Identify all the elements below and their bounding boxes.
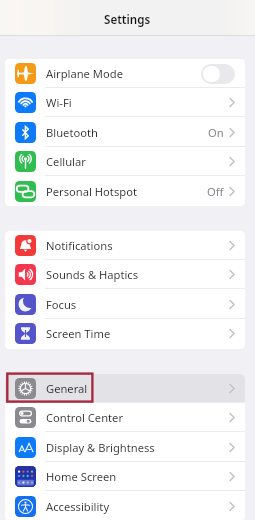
- button[interactable]: Bluetooth: [5, 118, 245, 147]
- staticText: Sounds & Haptics: [46, 267, 139, 282]
- staticText: Focus: [46, 297, 77, 312]
- staticText: Personal Hotspot: [46, 184, 137, 199]
- button[interactable]: Airplane Mode: [5, 59, 245, 88]
- staticText: Bluetooth: [46, 125, 98, 140]
- button[interactable]: Cellular: [5, 147, 245, 176]
- staticText: Screen Time: [46, 326, 111, 341]
- button[interactable]: Airplane Mode toggle: [201, 64, 235, 84]
- staticText: Wi-Fi: [46, 95, 72, 110]
- staticText: General: [46, 381, 88, 396]
- staticText: Off: [207, 184, 224, 199]
- button[interactable]: Wi-Fi: [5, 88, 245, 117]
- button[interactable]: Display & Brightness: [5, 433, 245, 462]
- button[interactable]: Personal Hotspot: [5, 177, 245, 206]
- button[interactable]: Sounds & Haptics: [5, 260, 245, 289]
- button[interactable]: Accessibility: [5, 492, 245, 520]
- staticText: Display & Brightness: [46, 440, 155, 455]
- staticText: On: [208, 125, 224, 140]
- button[interactable]: Focus: [5, 290, 245, 319]
- staticText: Control Center: [46, 410, 124, 425]
- button[interactable]: Screen Time: [5, 319, 245, 348]
- staticText: Accessibility: [46, 499, 110, 514]
- staticText: Settings: [104, 12, 151, 28]
- button[interactable]: General: [5, 374, 245, 403]
- staticText: Home Screen: [46, 469, 117, 484]
- button[interactable]: Control Center: [5, 403, 245, 432]
- staticText: Airplane Mode: [46, 66, 123, 81]
- staticText: Cellular: [46, 154, 86, 169]
- staticText: Notifications: [46, 238, 113, 253]
- button[interactable]: Home Screen: [5, 462, 245, 491]
- button[interactable]: Notifications: [5, 231, 245, 260]
